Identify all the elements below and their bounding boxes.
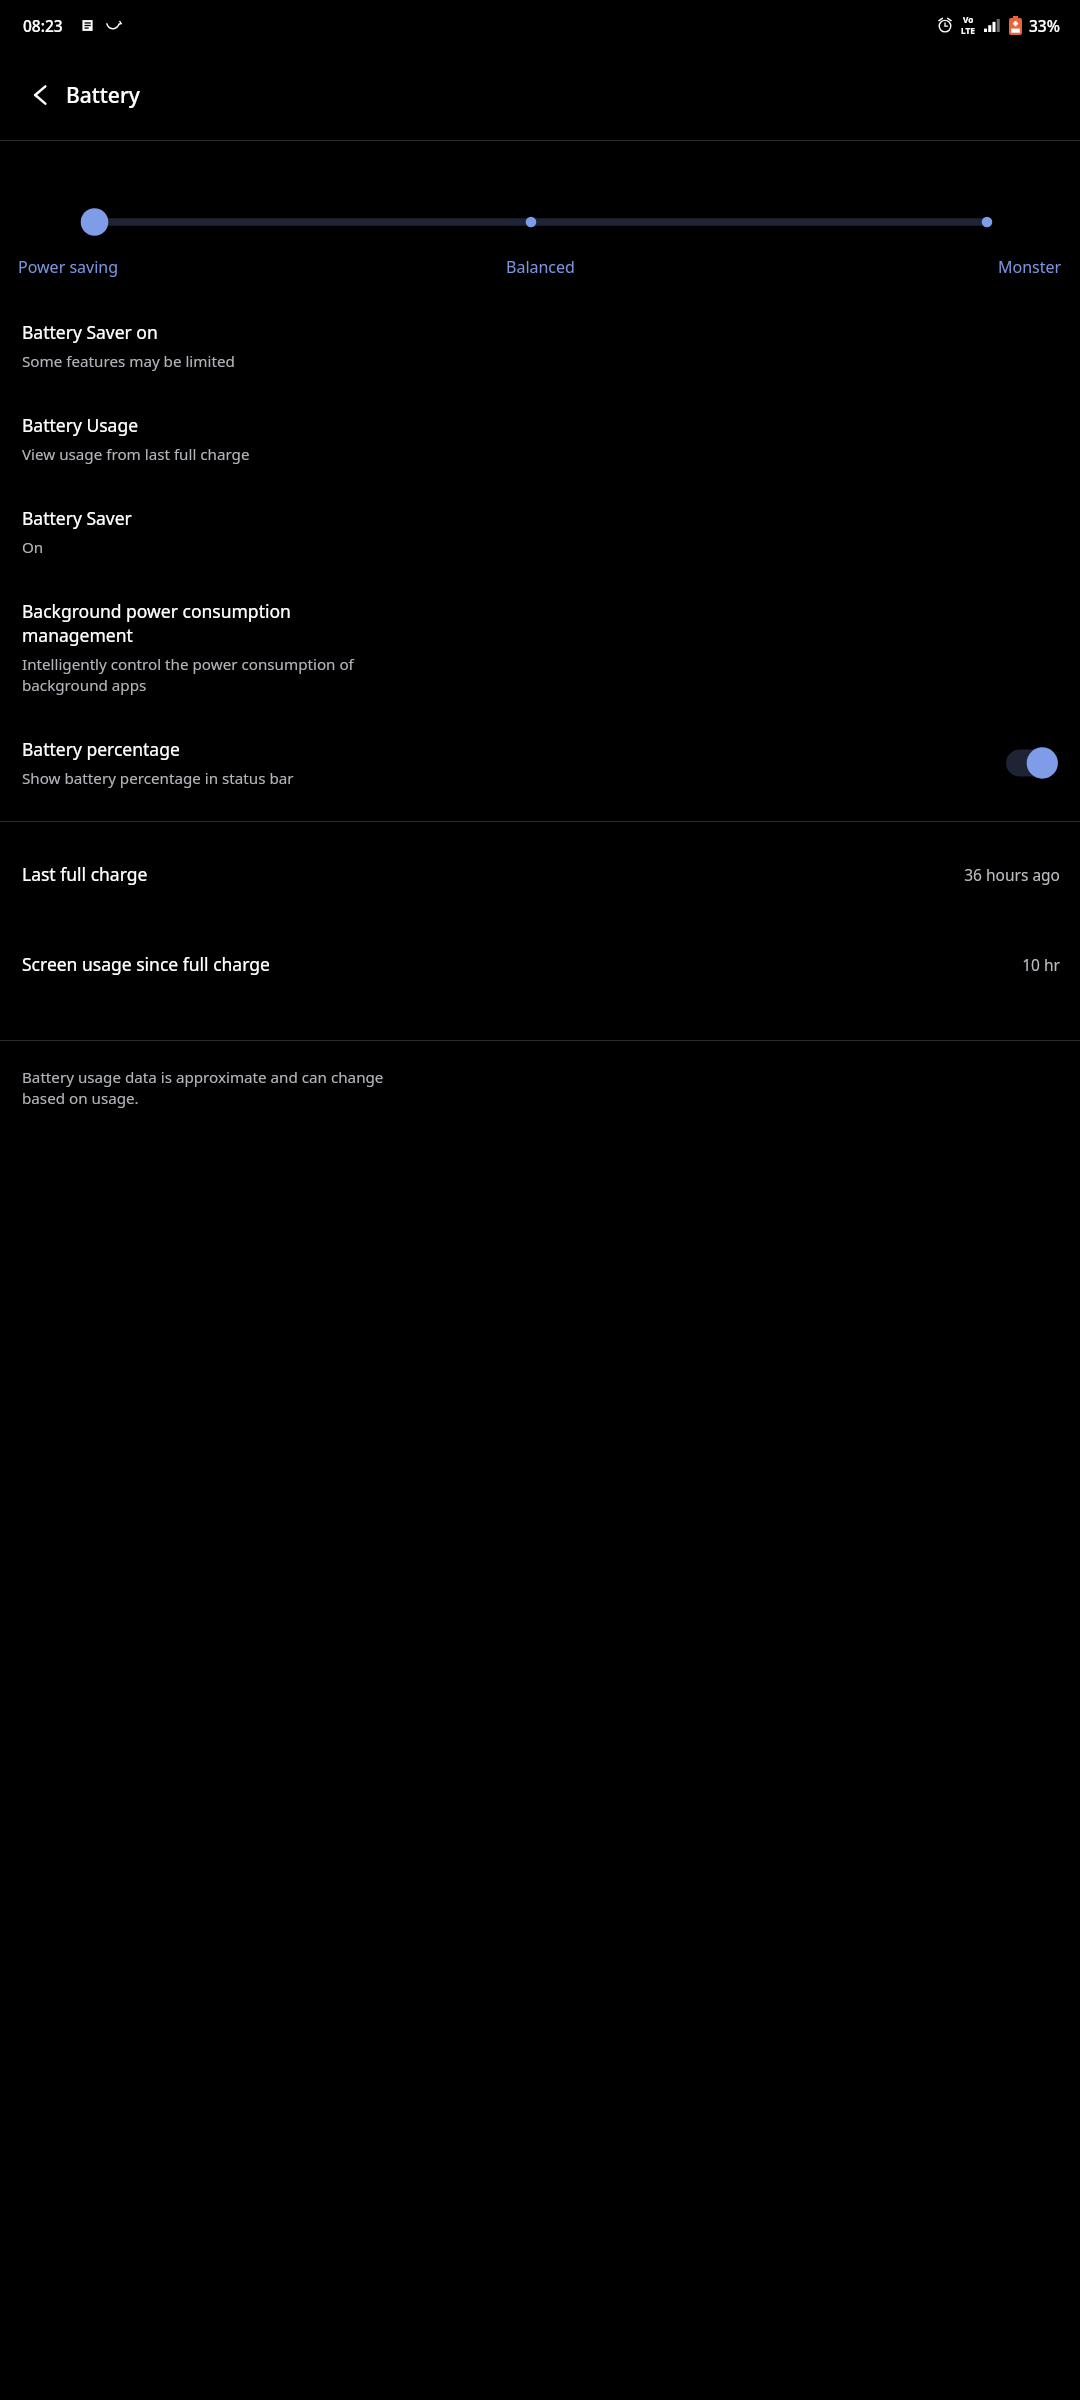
- button[interactable]: Battery Saver: [0, 481, 1080, 574]
- button[interactable]: Battery percentage: [0, 712, 1080, 799]
- staticText: Battery Saver: [22, 506, 132, 530]
- staticText: 36 hours ago: [964, 864, 1060, 885]
- staticText: Show battery percentage in status bar: [22, 768, 294, 789]
- button[interactable]: Screen usage since full charge: [0, 890, 1080, 980]
- staticText: View usage from last full charge: [22, 444, 250, 465]
- button[interactable]: Battery percentage toggle: [1006, 746, 1062, 780]
- staticText: Battery usage data is approximate and ca…: [22, 1067, 384, 1109]
- staticText: Power saving: [18, 256, 119, 278]
- staticText: Battery percentage: [22, 737, 180, 761]
- staticText: LTE: [961, 25, 975, 36]
- button[interactable]: [0, 199, 1080, 245]
- button[interactable]: Back: [14, 68, 68, 122]
- button[interactable]: Battery Usage: [0, 388, 1080, 481]
- staticText: Some features may be limited: [22, 351, 235, 372]
- staticText: 33%: [1029, 15, 1060, 36]
- staticText: Battery Usage: [22, 413, 139, 437]
- staticText: Balanced: [506, 256, 575, 278]
- staticText: Battery: [66, 81, 140, 110]
- button[interactable]: Background power consumption management: [0, 574, 1080, 712]
- staticText: Monster: [998, 256, 1062, 278]
- button[interactable]: Last full charge: [0, 822, 1080, 890]
- staticText: Background power consumption management: [22, 599, 291, 647]
- staticText: Intelligently control the power consumpt…: [22, 654, 354, 696]
- button[interactable]: Battery Saver on: [0, 300, 1080, 388]
- staticText: 10 hr: [1022, 954, 1060, 975]
- staticText: Vo: [963, 14, 974, 25]
- staticText: On: [22, 537, 44, 558]
- staticText: Battery Saver on: [22, 320, 158, 344]
- staticText: Screen usage since full charge: [22, 952, 1022, 976]
- staticText: 08:23: [23, 15, 63, 36]
- staticText: Last full charge: [22, 862, 964, 886]
